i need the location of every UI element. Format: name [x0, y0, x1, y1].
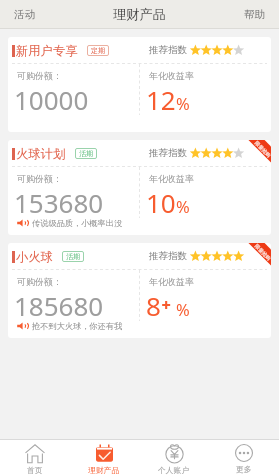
staticText: %	[176, 298, 190, 320]
staticText: %	[176, 92, 190, 114]
staticText: 小火球	[16, 249, 53, 264]
button[interactable]: 火球计划	[8, 140, 271, 235]
staticText: 可购份额：	[17, 70, 62, 81]
staticText: 定期	[91, 46, 105, 55]
staticText: 新用户专享	[16, 43, 78, 58]
button[interactable]: 新用户专享	[8, 37, 271, 132]
staticText: 10	[146, 185, 176, 220]
staticText: 10000	[14, 82, 89, 117]
staticText: 抢不到大火球，你还有我	[32, 321, 123, 331]
staticText: 限量抢购	[254, 140, 271, 158]
staticText: %	[176, 195, 190, 217]
staticText: 153680	[14, 185, 104, 220]
staticText: 活期	[79, 149, 93, 158]
staticText: 年化收益率	[149, 276, 194, 287]
button[interactable]: 帮助	[234, 4, 279, 25]
staticText: 理财产品	[88, 465, 120, 475]
staticText: 帮助	[244, 8, 266, 21]
button[interactable]: 理财产品	[69, 440, 139, 476]
staticText: 理财产品	[113, 6, 166, 23]
staticText: 8	[146, 288, 161, 323]
staticText: 传说级品质，小概率出没	[32, 218, 123, 228]
staticText: 推荐指数	[149, 250, 187, 262]
button[interactable]: 个人账户	[139, 440, 209, 476]
staticText: 12	[146, 82, 176, 117]
staticText: 185680	[14, 288, 104, 323]
button[interactable]: 首页	[0, 440, 69, 476]
button[interactable]: 更多	[209, 440, 279, 476]
staticText: 推荐指数	[149, 44, 187, 56]
staticText: 个人账户	[158, 465, 190, 475]
staticText: 推荐指数	[149, 147, 187, 159]
staticText: 更多	[236, 464, 252, 474]
staticText: 年化收益率	[149, 173, 194, 184]
button[interactable]: 小火球	[8, 243, 271, 338]
staticText: 首页	[27, 465, 43, 475]
staticText: 限量抢购	[254, 243, 271, 261]
staticText: 活期	[66, 252, 80, 261]
staticText: 火球计划	[16, 146, 66, 161]
staticText: 可购份额：	[17, 173, 62, 184]
staticText: 可购份额：	[17, 276, 62, 287]
button[interactable]: 活动	[0, 4, 46, 25]
staticText: 年化收益率	[149, 70, 194, 81]
staticText: 活动	[14, 8, 36, 21]
